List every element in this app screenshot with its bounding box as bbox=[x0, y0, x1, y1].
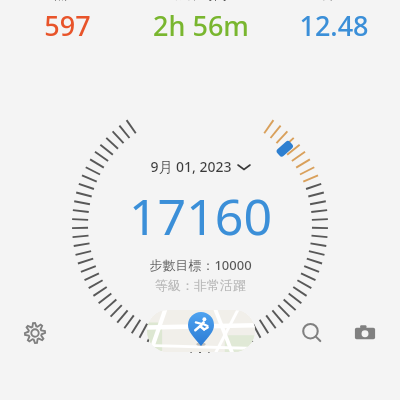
button[interactable]: 活躍時間 bbox=[134, 0, 267, 44]
staticText: 熱量 bbox=[54, 0, 80, 2]
staticText: 597 bbox=[44, 7, 91, 44]
staticText: 2h 56m bbox=[153, 7, 249, 44]
staticText: 12.48 bbox=[299, 7, 369, 44]
button[interactable]: Search bbox=[293, 314, 331, 352]
button[interactable]: Camera bbox=[346, 314, 384, 352]
staticText: 公里 bbox=[321, 0, 347, 2]
button[interactable]: Workout map bbox=[147, 310, 255, 352]
button[interactable]: 9月 01, 2023 bbox=[150, 157, 250, 176]
staticText: 17160 bbox=[129, 182, 272, 250]
staticText: 等級：非常活躍 bbox=[155, 277, 246, 293]
button[interactable]: 公里 bbox=[267, 0, 400, 44]
button[interactable]: 熱量 bbox=[0, 0, 134, 44]
staticText: 步數目標：10000 bbox=[149, 256, 252, 274]
staticText: 9月 01, 2023 bbox=[150, 157, 232, 176]
staticText: 活躍時間 bbox=[175, 0, 227, 2]
button[interactable]: Settings bbox=[16, 314, 54, 352]
